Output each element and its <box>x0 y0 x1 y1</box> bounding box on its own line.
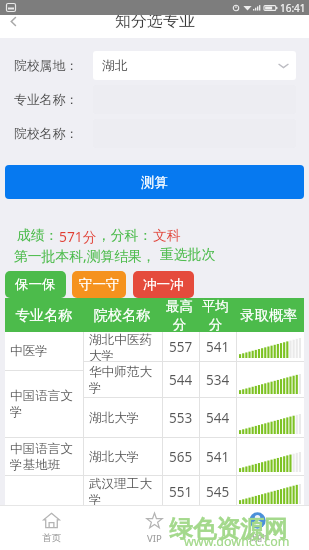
staticText: 湖北 <box>102 58 128 74</box>
staticText: 绿色资源网 <box>169 514 288 544</box>
staticText: 专业名称： <box>14 92 78 108</box>
button[interactable]: 武汉理工大学 <box>84 476 304 507</box>
staticText: 湖北中医药大学 <box>89 332 160 361</box>
staticText: 湖北大学 <box>89 449 140 465</box>
button[interactable]: 湖北中医药大学 <box>84 332 304 361</box>
staticText: 544 <box>206 409 230 427</box>
staticText: 16:41 <box>280 1 306 15</box>
staticText: 最高 分 <box>166 298 193 332</box>
staticText: 专业名称 <box>15 306 73 324</box>
staticText: 565 <box>169 448 193 466</box>
staticText: 544 <box>169 371 193 389</box>
staticText: 首页 <box>42 532 61 544</box>
button[interactable]: VIP <box>103 506 206 550</box>
staticText: 测算 <box>141 174 168 191</box>
staticText: 武汉理工大学 <box>89 476 160 507</box>
staticText: VIP <box>147 532 162 545</box>
staticText: www.downcc.com <box>184 533 290 550</box>
staticText: 平均 分 <box>202 298 229 332</box>
staticText: 院校名称： <box>14 126 78 142</box>
staticText: 守一守 <box>79 276 120 293</box>
button[interactable]: 首页 <box>0 506 103 550</box>
staticText: 保一保 <box>15 276 56 293</box>
button[interactable]: 保一保 <box>5 271 66 298</box>
staticText: 551 <box>169 483 193 501</box>
staticText: 541 <box>206 338 230 356</box>
staticText: 中国语言文学基地班 <box>10 441 81 473</box>
button[interactable]: 冲一冲 <box>133 271 194 298</box>
staticText: 我的 <box>248 532 267 544</box>
button[interactable]: 中国语言文学基地班 <box>10 438 81 475</box>
button[interactable]: 华中师范大学 <box>84 362 304 397</box>
button[interactable]: 我的 <box>206 506 309 550</box>
button[interactable]: 湖北大学 <box>84 438 304 475</box>
staticText: 文科 <box>153 227 181 244</box>
button[interactable]: 中医学 <box>10 332 81 370</box>
button[interactable]: 湖北 <box>93 51 296 80</box>
staticText: 冲一冲 <box>143 276 184 293</box>
staticText: 第一批本科,测算结果， <box>14 246 160 265</box>
staticText: 录取概率 <box>240 306 298 324</box>
staticText: 534 <box>206 371 230 389</box>
staticText: 中医学 <box>10 343 48 359</box>
button[interactable]: Back <box>0 0 26 38</box>
button[interactable]: 守一守 <box>72 271 126 298</box>
button[interactable]: 中国语言文学 <box>10 371 81 437</box>
button[interactable]: 湖北大学 <box>84 398 304 437</box>
button[interactable]: 重选批次 <box>160 246 216 263</box>
staticText: 553 <box>169 409 193 427</box>
staticText: 湖北大学 <box>89 410 140 426</box>
staticText: 541 <box>206 448 230 466</box>
staticText: 华中师范大学 <box>89 364 160 396</box>
staticText: 院校名称 <box>93 306 151 324</box>
staticText: 知分选专业 <box>115 11 195 31</box>
staticText: 院校属地： <box>14 58 78 74</box>
button[interactable]: 测算 <box>5 165 304 199</box>
staticText: 557 <box>169 338 193 356</box>
staticText: 545 <box>206 483 230 501</box>
button[interactable] <box>10 476 81 507</box>
staticText: ，分科： <box>97 227 153 244</box>
staticText: 成绩： <box>17 227 59 244</box>
staticText: 中国语言文学 <box>10 388 81 420</box>
staticText: 571分 <box>59 227 97 246</box>
